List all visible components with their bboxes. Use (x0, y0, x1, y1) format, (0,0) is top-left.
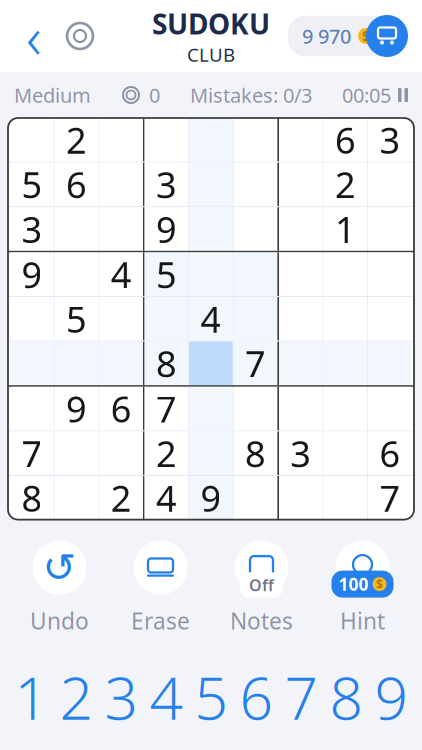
button[interactable]: Cell row 3 column 3 (99, 207, 143, 251)
button[interactable]: 9 (368, 664, 413, 730)
button[interactable]: Cell row 8 column 1 (10, 431, 54, 475)
button[interactable]: Cell row 1 column 7 (279, 118, 323, 162)
button[interactable]: ↺ (9, 538, 110, 636)
button[interactable]: Cell row 1 column 2 (55, 118, 98, 162)
staticText (72, 474, 81, 522)
button[interactable]: Cell row 4 column 7 (279, 252, 323, 296)
button[interactable]: Cell row 1 column 8 (324, 118, 367, 162)
button[interactable]: Cell row 1 column 6 (234, 118, 277, 162)
button[interactable]: Cell row 4 column 6 (234, 252, 277, 296)
button[interactable]: 8 (323, 664, 368, 730)
button[interactable]: Cell row 5 column 2 (55, 297, 98, 341)
button[interactable]: Cell row 3 column 7 (279, 207, 323, 251)
button[interactable]: Back (14, 12, 54, 60)
button[interactable]: Cell row 4 column 4 (145, 252, 188, 296)
button[interactable]: Cell row 2 column 8 (324, 163, 367, 206)
button[interactable]: Cell row 3 column 5 (189, 207, 233, 251)
button[interactable]: 2 (53, 664, 98, 730)
button[interactable]: Cell row 1 column 4 (145, 118, 188, 162)
button[interactable]: Cell row 2 column 2 (55, 163, 98, 206)
button[interactable]: Cell row 4 column 3 (99, 252, 143, 296)
button[interactable]: Settings (58, 12, 102, 60)
button[interactable]: Cell row 8 column 7 (279, 431, 323, 475)
button[interactable]: Cell row 2 column 1 (10, 163, 54, 206)
button[interactable]: 7 (278, 664, 323, 730)
button[interactable]: Cell row 5 column 5 (189, 297, 233, 341)
button[interactable]: Cell row 1 column 5 (189, 118, 233, 162)
button[interactable]: Cell row 1 column 1 (10, 118, 54, 162)
button[interactable]: Off (211, 538, 312, 636)
button[interactable]: Cell row 4 column 9 (368, 252, 412, 296)
button[interactable]: Cell row 3 column 4 (145, 207, 188, 251)
button[interactable]: Cell row 9 column 6 (234, 476, 277, 520)
button[interactable]: Cell row 3 column 2 (55, 207, 98, 251)
button[interactable]: 3 (98, 664, 143, 730)
button[interactable]: Cell row 8 column 9 (368, 431, 412, 475)
button[interactable]: Cell row 7 column 4 (145, 387, 188, 430)
button[interactable]: Cell row 9 column 3 (99, 476, 143, 520)
button[interactable]: Cell row 6 column 6 (234, 342, 277, 385)
button[interactable]: Cell row 7 column 3 (99, 387, 143, 430)
button[interactable]: Cell row 2 column 4 (145, 163, 188, 206)
button[interactable]: Cell row 8 column 6 (234, 431, 277, 475)
staticText (206, 250, 215, 298)
button[interactable]: 4 (143, 664, 188, 730)
button[interactable]: Cell row 8 column 4 (145, 431, 188, 475)
button[interactable]: Cell row 7 column 2 (55, 387, 98, 430)
button[interactable]: Cell row 4 column 1 (10, 252, 54, 296)
button[interactable]: Cell row 3 column 1 (10, 207, 54, 251)
button[interactable]: Erase (110, 538, 211, 636)
button[interactable]: 1 (8, 664, 53, 730)
button[interactable]: Cell row 9 column 8 (324, 476, 367, 520)
button[interactable]: Cell row 9 column 2 (55, 476, 98, 520)
button[interactable]: Cell row 9 column 1 (10, 476, 54, 520)
button[interactable]: Cell row 9 column 9 (368, 476, 412, 520)
button[interactable]: Cell row 1 column 9 (368, 118, 412, 162)
button[interactable]: 6 (233, 664, 278, 730)
button[interactable]: Cell row 1 column 3 (99, 118, 143, 162)
button[interactable]: Cell row 9 column 5 (189, 476, 233, 520)
button[interactable]: Coins and shop (288, 15, 408, 57)
button[interactable]: Cell row 6 column 5 (189, 342, 233, 385)
button[interactable]: Cell row 6 column 4 (145, 342, 188, 385)
button[interactable]: Cell row 4 column 8 (324, 252, 367, 296)
button[interactable]: 100 (312, 538, 413, 636)
button[interactable]: Cell row 9 column 7 (279, 476, 323, 520)
button[interactable]: Cell row 9 column 4 (145, 476, 188, 520)
button[interactable]: Cell row 3 column 8 (324, 207, 367, 251)
button[interactable]: Cell row 4 column 2 (55, 252, 98, 296)
button[interactable]: Cell row 3 column 6 (234, 207, 277, 251)
button[interactable]: Pause (342, 82, 408, 108)
button[interactable]: Cell row 4 column 5 (189, 252, 233, 296)
button[interactable]: 5 (188, 664, 233, 730)
button[interactable]: Cell row 3 column 9 (368, 207, 412, 251)
